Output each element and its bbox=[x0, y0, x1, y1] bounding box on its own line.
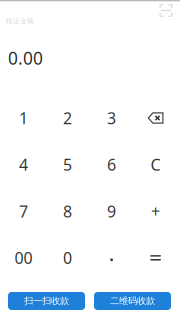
staticText: 6 bbox=[107, 154, 116, 175]
button[interactable]: 8 bbox=[46, 188, 90, 234]
button[interactable]: + bbox=[134, 188, 178, 234]
staticText: 二维码收款 bbox=[110, 295, 155, 307]
button[interactable]: 7 bbox=[2, 188, 46, 234]
button[interactable]: 0 bbox=[46, 234, 90, 281]
button[interactable]: 6 bbox=[90, 141, 134, 188]
button[interactable]: 1 bbox=[2, 95, 46, 141]
staticText: 9 bbox=[107, 201, 116, 222]
staticText: 8 bbox=[63, 201, 72, 222]
staticText: 00 bbox=[15, 247, 33, 268]
button[interactable]: 00 bbox=[2, 234, 46, 281]
staticText: 3 bbox=[107, 107, 116, 129]
staticText: + bbox=[151, 201, 160, 222]
staticText: 扫一扫收款 bbox=[24, 295, 69, 307]
button[interactable]: 扫一扫收款 bbox=[8, 292, 85, 310]
staticText: C bbox=[151, 154, 161, 175]
button[interactable]: 小数点 bbox=[90, 234, 134, 281]
staticText: 2 bbox=[63, 107, 72, 129]
button[interactable]: 9 bbox=[90, 188, 134, 234]
button[interactable]: 4 bbox=[2, 141, 46, 188]
staticText: 0 bbox=[63, 247, 72, 268]
staticText: 4 bbox=[19, 154, 28, 175]
button[interactable]: C bbox=[134, 141, 178, 188]
button[interactable]: 5 bbox=[46, 141, 90, 188]
button[interactable]: 二维码收款 bbox=[94, 292, 171, 310]
button[interactable]: 等于 bbox=[134, 234, 178, 281]
staticText: 1 bbox=[19, 107, 28, 129]
staticText: 0.00 bbox=[8, 46, 43, 69]
staticText: 7 bbox=[19, 201, 28, 222]
button[interactable]: 扫码 bbox=[155, 0, 177, 20]
button[interactable]: 删除 bbox=[134, 95, 178, 141]
staticText: 5 bbox=[63, 154, 72, 175]
button[interactable]: 2 bbox=[46, 95, 90, 141]
button[interactable]: 3 bbox=[90, 95, 134, 141]
staticText: 指定金额 bbox=[6, 17, 34, 25]
